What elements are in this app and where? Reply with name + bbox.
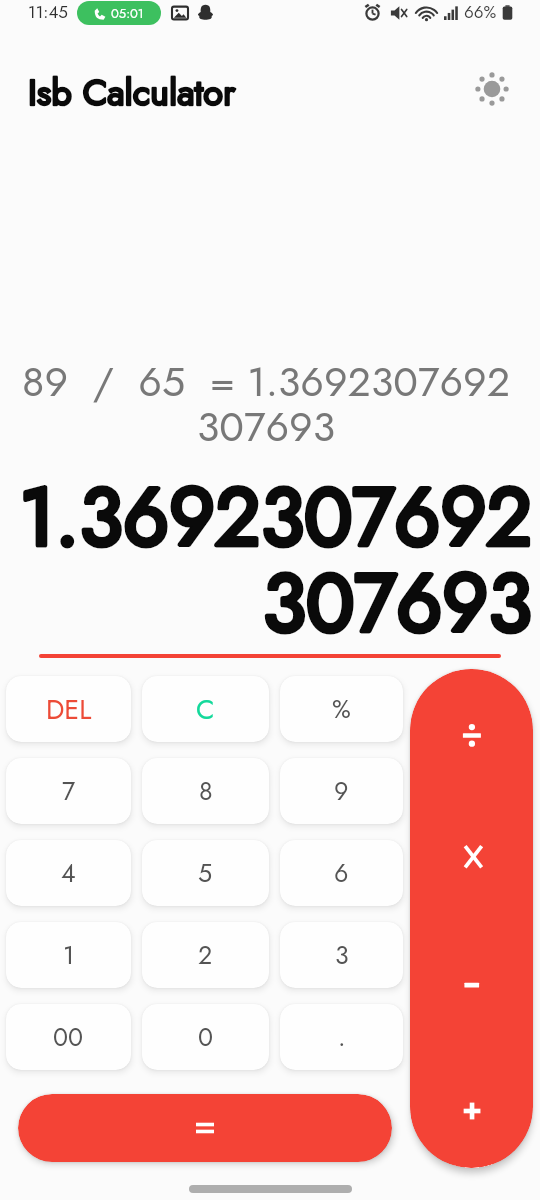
button[interactable]: 4 <box>6 840 131 906</box>
button[interactable]: 2 <box>142 922 269 988</box>
button[interactable]: 1 <box>6 922 131 988</box>
staticText: C <box>196 690 215 729</box>
button[interactable]: Divide <box>410 679 533 791</box>
button[interactable]: C <box>142 676 269 742</box>
staticText: . <box>338 1019 346 1055</box>
button[interactable]: 9 <box>280 758 403 824</box>
button[interactable]: 5 <box>142 840 269 906</box>
staticText: 1.3692307692 307693 <box>0 459 532 661</box>
staticText: 3 <box>335 937 349 973</box>
staticText: % <box>332 691 351 727</box>
button[interactable]: 8 <box>142 758 269 824</box>
staticText: 6 <box>334 855 349 891</box>
staticText: 1.3692307692 307693 <box>0 459 532 661</box>
button[interactable]: DEL <box>6 676 131 742</box>
button[interactable]: 00 <box>6 1004 131 1070</box>
staticText: 8 <box>199 773 213 809</box>
button[interactable]: Subtract <box>410 928 533 1040</box>
button[interactable]: 0 <box>142 1004 269 1070</box>
staticText: 89 / 65 = 1.3692307692 307693 <box>18 352 514 457</box>
button[interactable]: . <box>280 1004 403 1070</box>
button[interactable]: 3 <box>280 922 403 988</box>
button[interactable]: Equals <box>18 1094 392 1162</box>
staticText: 5 <box>198 855 213 891</box>
staticText: 4 <box>61 855 76 891</box>
button[interactable]: % <box>280 676 403 742</box>
staticText: 1 <box>63 937 75 973</box>
staticText: DEL <box>46 690 92 729</box>
staticText: 9 <box>334 773 349 809</box>
button[interactable]: Multiply <box>410 801 533 913</box>
staticText: Isb Calculator <box>28 66 236 118</box>
button[interactable]: Add <box>410 1055 533 1167</box>
staticText: 2 <box>198 937 213 973</box>
staticText: 7 <box>62 773 76 809</box>
button[interactable]: Toggle theme <box>469 66 514 111</box>
button[interactable]: 6 <box>280 840 403 906</box>
staticText: 00 <box>53 1019 84 1055</box>
staticText: 05:01 <box>111 4 144 23</box>
staticText: 66% <box>464 0 497 25</box>
staticText: 0 <box>198 1019 214 1055</box>
button[interactable]: 7 <box>6 758 131 824</box>
staticText: Isb Calculator <box>28 66 236 118</box>
staticText: 11:45 <box>28 0 68 25</box>
